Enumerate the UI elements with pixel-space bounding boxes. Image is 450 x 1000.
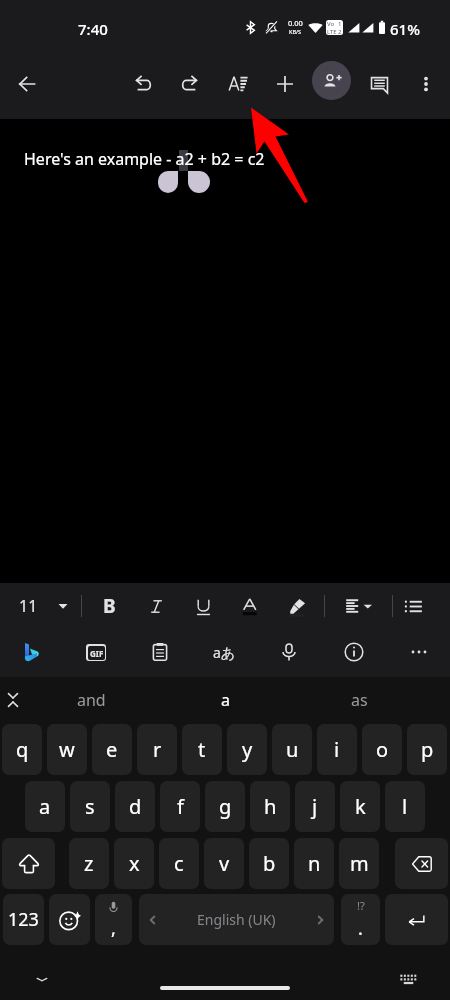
staticText: 7:40 <box>78 19 108 39</box>
button[interactable]: Translate <box>201 629 247 675</box>
staticText: 123 <box>8 907 39 932</box>
button[interactable]: s <box>70 781 110 832</box>
button[interactable]: Share <box>312 61 351 100</box>
staticText: !? <box>357 898 365 913</box>
staticText: Vo <box>327 20 335 28</box>
button[interactable]: as <box>309 677 409 722</box>
staticText: 1 <box>338 20 342 28</box>
staticText: r <box>153 736 162 763</box>
button[interactable]: GIF <box>73 629 119 675</box>
button[interactable]: Bulleted list <box>400 583 426 629</box>
button[interactable]: Hide keyboard <box>26 963 58 995</box>
button[interactable]: and <box>41 677 141 722</box>
staticText: p <box>421 736 434 763</box>
button[interactable]: Clipboard <box>137 629 183 675</box>
button[interactable]: Underline <box>190 583 216 629</box>
staticText: English (UK) <box>197 910 276 929</box>
staticText: u <box>286 736 299 763</box>
button[interactable]: j <box>295 781 335 832</box>
button[interactable]: Redo <box>170 64 210 104</box>
staticText: 0.00 <box>288 18 303 28</box>
staticText: a <box>221 689 230 711</box>
staticText: s <box>85 793 95 820</box>
button[interactable]: Text colour <box>237 583 263 629</box>
button[interactable]: Highlight <box>284 583 310 629</box>
button[interactable]: Text formatting <box>218 64 258 104</box>
staticText: n <box>308 850 321 877</box>
staticText: q <box>16 736 29 763</box>
button[interactable]: Comma <box>95 894 132 945</box>
staticText: z <box>84 850 94 877</box>
staticText: , <box>111 916 116 941</box>
staticText: h <box>264 793 277 820</box>
staticText: b <box>263 850 276 877</box>
button[interactable]: n <box>294 838 334 889</box>
button[interactable]: a <box>25 781 65 832</box>
button[interactable]: More <box>396 629 442 675</box>
staticText: i <box>334 736 340 763</box>
button[interactable]: Undo <box>123 64 163 104</box>
button[interactable]: w <box>47 724 87 775</box>
button[interactable]: Align <box>334 583 386 629</box>
button[interactable]: e <box>92 724 132 775</box>
button[interactable]: u <box>272 724 312 775</box>
button[interactable]: g <box>205 781 245 832</box>
staticText: d <box>129 793 142 820</box>
button[interactable]: Back <box>7 64 47 104</box>
button[interactable]: Info <box>331 629 377 675</box>
button[interactable]: d <box>115 781 155 832</box>
button[interactable]: Bold <box>96 583 122 629</box>
staticText: f <box>177 793 184 820</box>
staticText: l <box>402 793 408 820</box>
button[interactable]: Italic <box>143 583 169 629</box>
staticText: y <box>242 736 253 763</box>
button[interactable]: q <box>2 724 42 775</box>
staticText: as <box>351 689 368 711</box>
button[interactable]: b <box>249 838 289 889</box>
staticText: c <box>174 850 184 877</box>
button[interactable]: Numbers <box>3 894 44 945</box>
button[interactable]: Period <box>341 894 380 945</box>
button[interactable]: p <box>407 724 447 775</box>
button[interactable]: o <box>362 724 402 775</box>
button[interactable]: Backspace <box>395 838 448 889</box>
button[interactable]: Switch keyboard <box>392 963 424 995</box>
button[interactable]: 11 <box>6 583 84 629</box>
button[interactable]: f <box>160 781 200 832</box>
button[interactable]: c <box>159 838 199 889</box>
staticText: a <box>39 793 51 820</box>
staticText: 2 <box>338 28 342 35</box>
button[interactable]: k <box>340 781 380 832</box>
button[interactable]: Copilot <box>8 629 54 675</box>
button[interactable]: m <box>339 838 379 889</box>
staticText: o <box>376 736 389 763</box>
button[interactable]: Enter <box>385 894 448 945</box>
button[interactable]: l <box>385 781 425 832</box>
staticText: . <box>358 916 363 941</box>
staticText: t <box>198 736 206 763</box>
staticText: j <box>312 793 318 820</box>
staticText: k <box>355 793 366 820</box>
button[interactable]: More options <box>406 64 446 104</box>
button[interactable]: z <box>69 838 109 889</box>
button[interactable]: h <box>250 781 290 832</box>
button[interactable]: English (UK) <box>139 894 334 945</box>
button[interactable]: t <box>182 724 222 775</box>
button[interactable]: x <box>114 838 154 889</box>
button[interactable]: Voice input <box>266 629 312 675</box>
button[interactable]: Expand suggestions <box>0 677 26 722</box>
button[interactable]: Comments <box>359 64 399 104</box>
staticText: LTE <box>327 28 337 35</box>
staticText: and <box>77 689 106 711</box>
button[interactable]: Emoji <box>49 894 90 945</box>
button[interactable]: Shift <box>2 838 55 889</box>
button[interactable]: v <box>204 838 244 889</box>
staticText: v <box>219 850 230 877</box>
button[interactable]: Insert <box>265 64 305 104</box>
staticText: aあ <box>213 643 236 662</box>
staticText: 11 <box>19 595 38 617</box>
button[interactable]: a <box>175 677 275 722</box>
button[interactable]: r <box>137 724 177 775</box>
button[interactable]: y <box>227 724 267 775</box>
button[interactable]: i <box>317 724 357 775</box>
